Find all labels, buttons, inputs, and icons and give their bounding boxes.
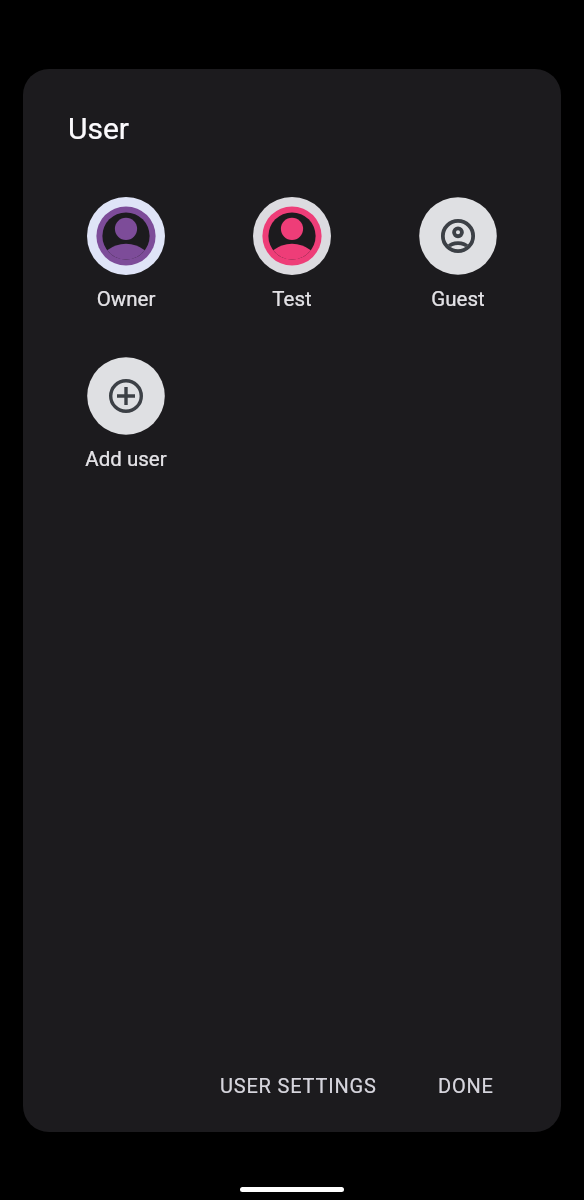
staticText: User [68,111,130,146]
staticText: DONE [438,1074,494,1097]
staticText: Owner [46,287,206,311]
staticText: USER SETTINGS [220,1074,377,1097]
button[interactable]: Test [212,189,372,321]
button[interactable]: USER SETTINGS [211,1061,386,1109]
other: Guest [419,197,497,275]
button[interactable]: Guest [378,189,538,321]
staticText: Add user [46,447,206,471]
button[interactable]: Owner [46,189,206,321]
button[interactable]: DONE [425,1061,507,1109]
other: Add user [87,357,165,435]
staticText: Guest [378,287,538,311]
staticText: Test [212,287,372,311]
button[interactable]: Add user [46,349,206,481]
